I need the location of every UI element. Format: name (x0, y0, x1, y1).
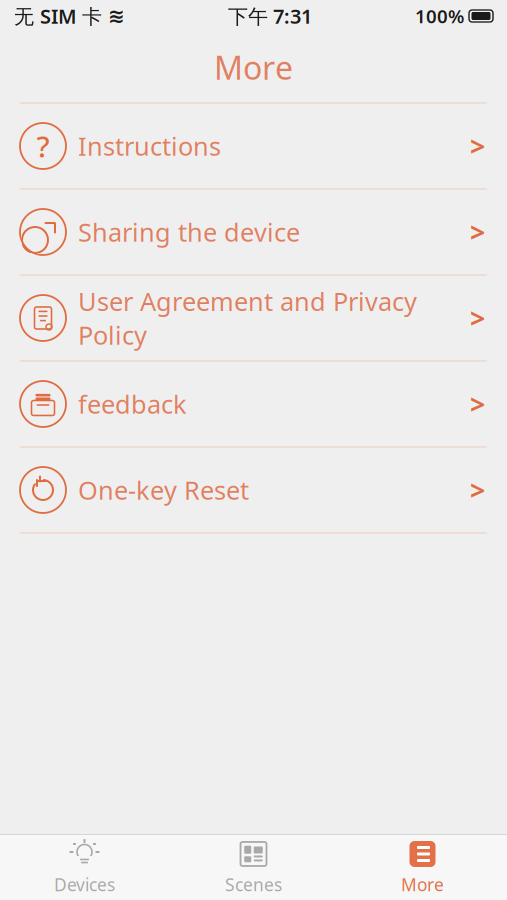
button[interactable]: ? (0, 103, 507, 189)
staticText: Instructions (78, 129, 221, 163)
button[interactable]: One-key Reset (0, 447, 507, 533)
staticText: > (470, 128, 485, 164)
button[interactable]: feedback (0, 361, 507, 447)
staticText: One-key Reset (78, 473, 249, 507)
button[interactable]: More (338, 831, 507, 900)
button[interactable]: Devices (0, 831, 169, 900)
staticText: 100% (415, 4, 464, 28)
staticText: More (401, 873, 444, 896)
staticText: ≋ (108, 5, 125, 27)
staticText: > (470, 300, 485, 336)
staticText: feedback (78, 387, 187, 421)
staticText: Devices (54, 873, 115, 896)
staticText: Scenes (225, 873, 282, 896)
staticText: > (470, 214, 485, 250)
staticText: > (470, 472, 485, 508)
staticText: Sharing the device (78, 215, 300, 249)
staticText: User Agreement and Privacy Policy (78, 284, 417, 352)
staticText: 下午 7:31 (228, 3, 312, 29)
button[interactable]: Sharing the device (0, 189, 507, 275)
staticText: More (214, 46, 293, 88)
button[interactable]: User Agreement and Privacy Policy (0, 275, 507, 361)
staticText: > (470, 386, 485, 422)
staticText: ? (36, 126, 49, 165)
button[interactable]: Scenes (169, 831, 338, 900)
staticText: 无 SIM 卡 (14, 3, 102, 29)
